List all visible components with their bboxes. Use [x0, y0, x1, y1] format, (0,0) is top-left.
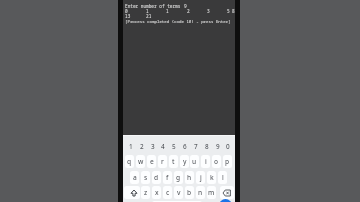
button[interactable]: j	[196, 171, 205, 184]
button[interactable]: o	[212, 155, 221, 168]
button[interactable]: a	[130, 171, 139, 184]
staticText: 1	[146, 8, 149, 14]
staticText: 13	[125, 13, 131, 19]
button[interactable]: p	[223, 155, 232, 168]
staticText: r	[161, 157, 164, 166]
button[interactable]: e	[147, 155, 156, 168]
staticText: 1	[166, 8, 169, 14]
staticText: k	[210, 173, 214, 182]
button[interactable]: 4	[157, 141, 168, 152]
button[interactable]	[220, 186, 234, 199]
staticText: 8	[232, 8, 235, 14]
button[interactable]: q	[125, 155, 134, 168]
button[interactable]: u	[190, 155, 199, 168]
staticText: 7	[194, 142, 198, 151]
button[interactable]: d	[152, 171, 161, 184]
staticText: 0	[226, 142, 230, 151]
button[interactable]: 3	[147, 141, 158, 152]
button[interactable]: y	[180, 155, 189, 168]
staticText: 9	[216, 142, 220, 151]
staticText: e	[150, 157, 154, 166]
button[interactable]: w	[136, 155, 145, 168]
staticText: 2	[187, 8, 190, 14]
button[interactable]: s	[141, 171, 150, 184]
staticText: 3	[151, 142, 155, 151]
staticText: a	[133, 173, 137, 182]
staticText: q	[127, 157, 132, 166]
staticText: y	[183, 157, 187, 166]
button[interactable]: m	[207, 186, 216, 199]
staticText: w	[138, 157, 144, 166]
staticText: v	[177, 188, 181, 197]
staticText: h	[187, 173, 192, 182]
staticText: [Process completed (code 10) - press Ent…	[125, 19, 231, 25]
staticText: 5	[172, 142, 176, 151]
button[interactable]: h	[185, 171, 194, 184]
staticText: 8	[205, 142, 209, 151]
button[interactable]: z	[141, 186, 150, 199]
button[interactable]	[219, 199, 232, 202]
button[interactable]: f	[163, 171, 172, 184]
button[interactable]: 5	[168, 141, 179, 152]
button[interactable]: v	[174, 186, 183, 199]
staticText: d	[154, 173, 159, 182]
button[interactable]: 8	[201, 141, 212, 152]
staticText: l	[222, 173, 224, 182]
staticText: j	[200, 173, 202, 182]
staticText: x	[155, 188, 159, 197]
staticText: s	[144, 173, 148, 182]
staticText: 6	[183, 142, 187, 151]
staticText: m	[208, 188, 215, 197]
button[interactable]: r	[158, 155, 167, 168]
staticText: 3	[207, 8, 210, 14]
button[interactable]: 6	[179, 141, 190, 152]
staticText: f	[166, 173, 169, 182]
staticText: 4	[161, 142, 165, 151]
staticText: g	[176, 173, 181, 182]
button[interactable]: t	[169, 155, 178, 168]
button[interactable]: c	[163, 186, 172, 199]
staticText: 9	[184, 3, 187, 9]
staticText: b	[187, 188, 192, 197]
button[interactable]: 7	[190, 141, 201, 152]
button[interactable]: 2	[136, 141, 147, 152]
button[interactable]: g	[174, 171, 183, 184]
button[interactable]: 0	[222, 141, 233, 152]
button[interactable]: 9	[212, 141, 223, 152]
button[interactable]: b	[185, 186, 194, 199]
staticText: c	[166, 188, 170, 197]
staticText: 1	[129, 142, 133, 151]
staticText: Enter number of terms	[125, 3, 181, 9]
button[interactable]: n	[196, 186, 205, 199]
button[interactable]: i	[201, 155, 210, 168]
staticText: p	[225, 157, 230, 166]
staticText: u	[192, 157, 197, 166]
staticText: 5	[227, 8, 230, 14]
button[interactable]: k	[207, 171, 216, 184]
button[interactable]: x	[152, 186, 161, 199]
button[interactable]	[124, 186, 140, 199]
staticText: 21	[146, 13, 152, 19]
staticText: 2	[140, 142, 144, 151]
staticText: z	[144, 188, 148, 197]
staticText: t	[172, 157, 175, 166]
staticText: n	[198, 188, 203, 197]
staticText: i	[205, 157, 207, 166]
button[interactable]: l	[218, 171, 227, 184]
button[interactable]: 1	[125, 141, 136, 152]
staticText: 0	[125, 8, 128, 14]
staticText: o	[214, 157, 219, 166]
